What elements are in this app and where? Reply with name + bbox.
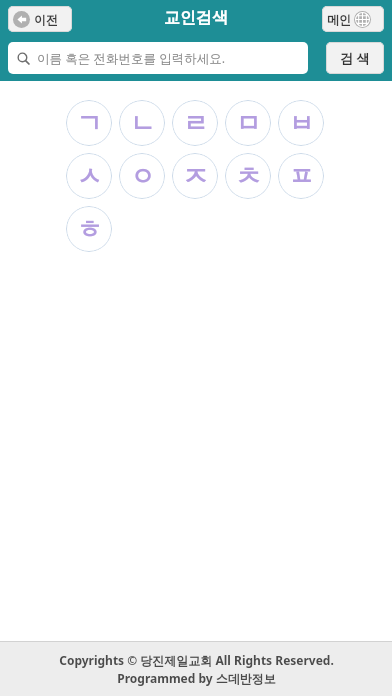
staticText: ㅂ <box>289 108 314 139</box>
staticText: Copyrights © 당진제일교회 All Rights Reserved. <box>59 652 334 668</box>
staticText: 교인검색 <box>164 8 228 28</box>
button[interactable]: 검 색 <box>326 42 384 74</box>
staticText: ㅈ <box>183 161 208 192</box>
button[interactable]: 메인 <box>322 6 384 32</box>
button[interactable]: ㅈ <box>172 153 218 199</box>
staticText: ㅍ <box>289 161 314 192</box>
button[interactable]: ㅍ <box>278 153 324 199</box>
staticText: 이전 <box>34 12 58 27</box>
staticText: ㅊ <box>236 161 261 192</box>
button[interactable]: ㅁ <box>225 100 271 146</box>
button[interactable]: 이전 <box>8 6 72 32</box>
staticText: ㅎ <box>77 214 102 245</box>
button[interactable]: ㄱ <box>66 100 112 146</box>
button[interactable]: ㅊ <box>225 153 271 199</box>
staticText: ㅇ <box>130 161 155 192</box>
staticText: 검 색 <box>340 49 370 67</box>
staticText: 이름 혹은 전화번호를 입력하세요. <box>37 50 226 67</box>
button[interactable]: ㅇ <box>119 153 165 199</box>
staticText: Programmed by 스데반정보 <box>117 670 276 686</box>
button[interactable]: ㄹ <box>172 100 218 146</box>
button[interactable]: ㄴ <box>119 100 165 146</box>
staticText: 메인 <box>327 12 351 27</box>
button[interactable]: ㅎ <box>66 206 112 252</box>
staticText: ㄱ <box>77 108 102 139</box>
staticText: ㄴ <box>130 108 155 139</box>
staticText: ㅅ <box>77 161 102 192</box>
staticText: ㅁ <box>236 108 261 139</box>
other: Main <box>354 11 371 28</box>
button[interactable]: 이름 혹은 전화번호를 입력하세요. <box>8 42 308 74</box>
button[interactable]: ㅅ <box>66 153 112 199</box>
staticText: ㄹ <box>183 108 208 139</box>
button[interactable]: ㅂ <box>278 100 324 146</box>
